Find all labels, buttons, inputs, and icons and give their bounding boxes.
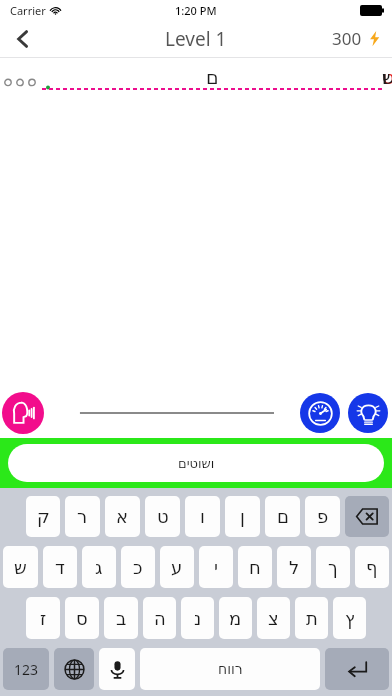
staticText: נ [194, 608, 202, 629]
button[interactable]: Change keyboard language [54, 648, 94, 690]
button[interactable]: ע [160, 546, 194, 588]
button[interactable]: צ [257, 597, 290, 639]
button[interactable]: א [105, 496, 140, 537]
staticText: ע [171, 557, 183, 578]
button[interactable]: Backspace [345, 496, 389, 537]
staticText: רווח [218, 661, 243, 677]
button[interactable]: ץ [333, 597, 366, 639]
staticText: ק [37, 506, 50, 527]
button[interactable]: Dictation [99, 648, 135, 690]
staticText: ז [40, 608, 47, 629]
staticText: ג [95, 557, 103, 578]
button[interactable]: כ [121, 546, 155, 588]
staticText: ט [157, 506, 169, 527]
button[interactable]: ג [82, 546, 116, 588]
button[interactable]: ך [316, 546, 350, 588]
button[interactable]: Speed [300, 393, 340, 433]
button[interactable]: נ [181, 597, 214, 639]
staticText: Level 1 [165, 26, 227, 52]
button[interactable]: 300 [332, 27, 383, 50]
staticText: ש [14, 557, 27, 578]
staticText: ה [154, 608, 166, 629]
button[interactable]: מ [219, 597, 252, 639]
staticText: ך [328, 557, 338, 578]
button[interactable]: ר [65, 496, 100, 537]
staticText: כ [133, 557, 143, 578]
staticText: 300 [332, 27, 362, 50]
button[interactable]: ט [145, 496, 180, 537]
staticText: ס [76, 608, 88, 629]
button[interactable]: י [199, 546, 233, 588]
staticText: מ [229, 608, 242, 629]
button[interactable]: רווח [140, 648, 320, 690]
staticText: ד [55, 557, 65, 578]
staticText: ם [277, 506, 289, 527]
staticText: ף [366, 557, 378, 578]
button[interactable]: פ [305, 496, 340, 537]
staticText: ב [116, 608, 127, 629]
button[interactable]: 123 [3, 648, 49, 690]
button[interactable]: ם [265, 496, 300, 537]
staticText: צ [268, 608, 279, 629]
staticText: ץ [345, 608, 355, 629]
button[interactable]: ת [295, 597, 328, 639]
button[interactable]: ב [104, 597, 138, 639]
button[interactable]: ל [277, 546, 311, 588]
staticText: Carrier [10, 3, 46, 18]
button[interactable]: Return [325, 648, 389, 690]
staticText: ן [240, 506, 245, 527]
button[interactable]: Back [0, 20, 46, 57]
staticText: ם [206, 66, 219, 88]
staticText: ו [200, 506, 205, 527]
button[interactable]: ח [238, 546, 272, 588]
staticText: ר [77, 506, 88, 527]
button[interactable]: ו [185, 496, 220, 537]
staticText: ל [289, 557, 300, 578]
staticText: י [214, 557, 219, 578]
staticText: ת [306, 608, 318, 629]
button[interactable]: ף [355, 546, 389, 588]
button[interactable]: ק [26, 496, 60, 537]
button[interactable]: ד [43, 546, 77, 588]
button[interactable]: ש [3, 546, 38, 588]
button[interactable]: Speak sentence [2, 392, 44, 434]
staticText: ח [249, 557, 261, 578]
button[interactable]: Hint [348, 393, 388, 433]
staticText: 123 [14, 660, 39, 679]
button[interactable]: ה [143, 597, 176, 639]
button[interactable]: ז [26, 597, 60, 639]
staticText: א [116, 506, 129, 527]
button[interactable]: ושוטים [8, 444, 384, 482]
button[interactable]: ן [225, 496, 260, 537]
staticText: פ [317, 506, 329, 527]
staticText: ושוטים [178, 456, 215, 471]
staticText: 1:20 PM [175, 3, 217, 18]
button[interactable]: ס [65, 597, 99, 639]
